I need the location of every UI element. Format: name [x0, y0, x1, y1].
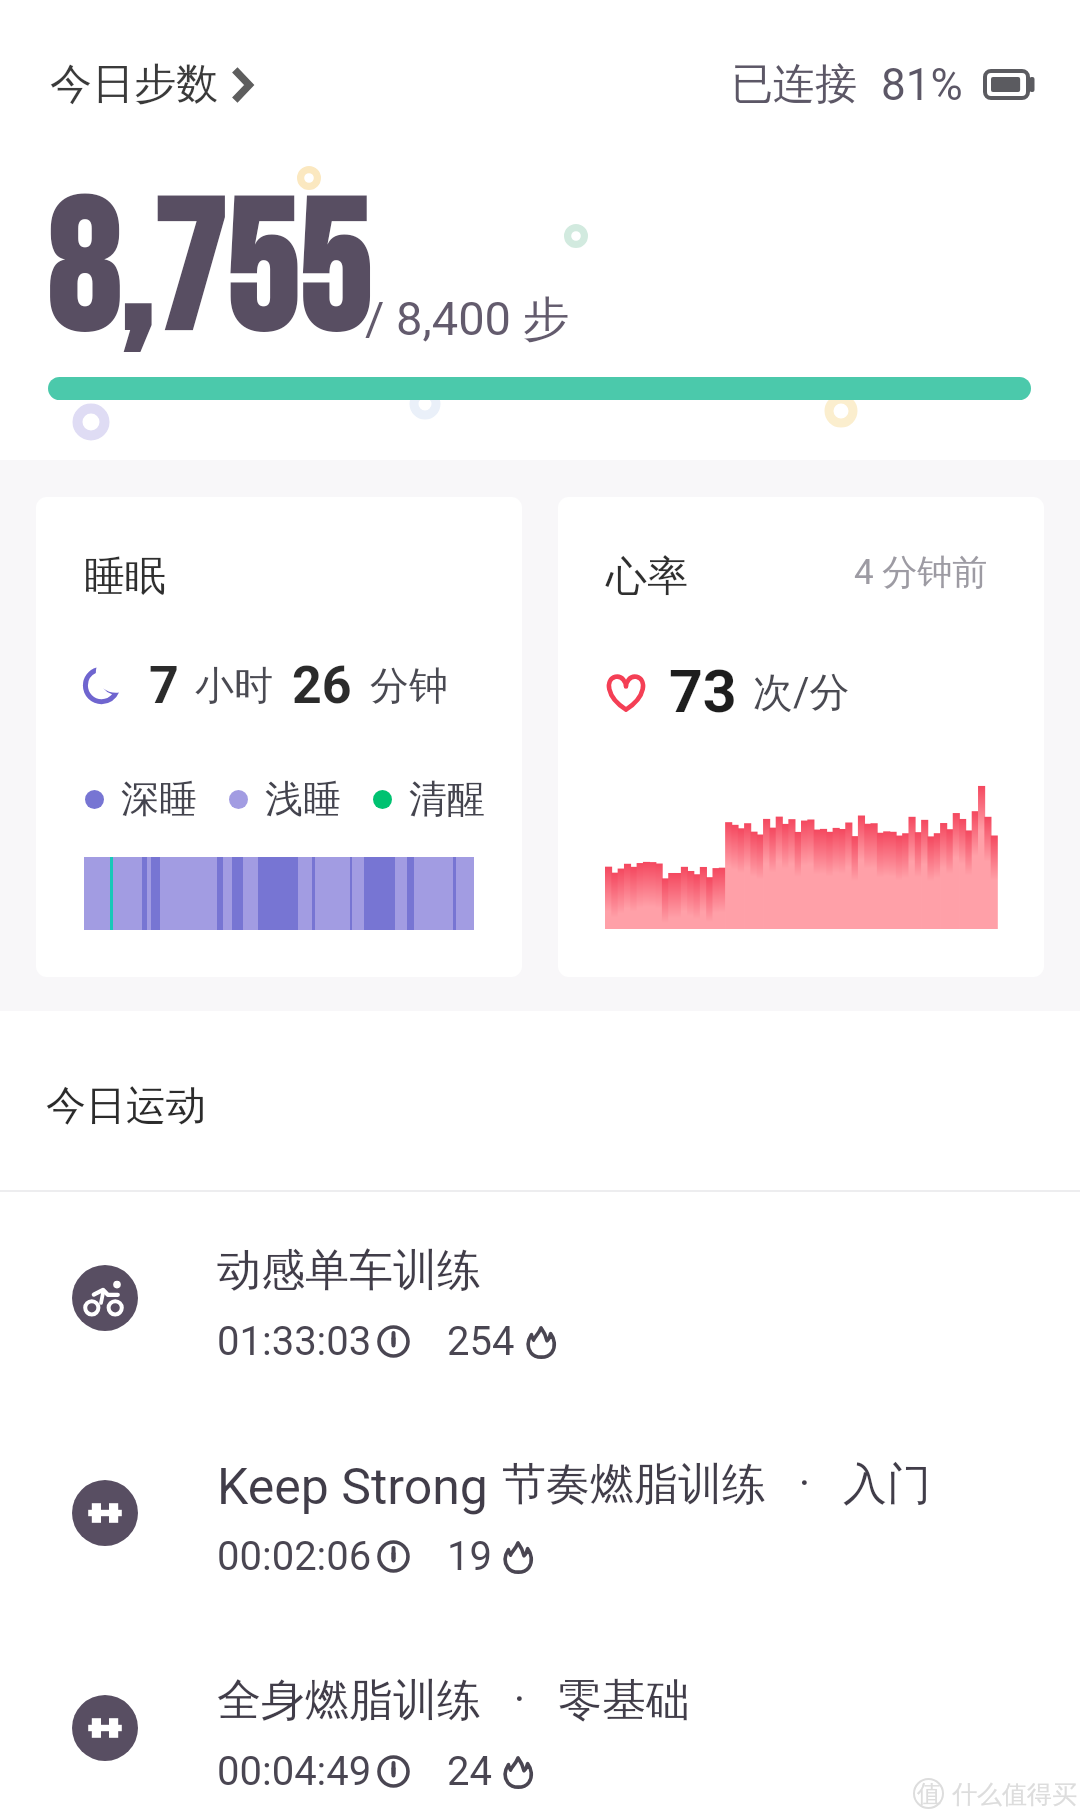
staticText: 26 — [292, 655, 352, 716]
staticText: 睡眠 — [84, 551, 166, 603]
staticText: 心率 — [606, 551, 688, 603]
staticText: 节奏燃脂训练 · 入门 — [502, 1457, 931, 1512]
staticText: 00:02:06 — [217, 1533, 372, 1580]
staticText: 什么值得买 — [952, 1779, 1077, 1810]
button[interactable]: Keep Strong — [0, 1405, 1080, 1624]
staticText: 73 — [669, 657, 737, 726]
staticText: 01:33:03 — [217, 1318, 372, 1365]
button[interactable]: 心率 — [558, 497, 1044, 977]
button[interactable]: 全身燃脂训练 · 零基础 — [0, 1620, 1080, 1819]
staticText: 全身燃脂训练 · 零基础 — [217, 1673, 690, 1728]
button[interactable]: 动感单车训练 — [0, 1190, 1080, 1409]
other: Battery 81 percent — [983, 69, 1035, 100]
staticText: 19 — [447, 1533, 492, 1580]
staticText: 4 分钟前 — [854, 550, 988, 594]
staticText: 分钟 — [370, 661, 448, 710]
staticText: 今日步数 — [50, 58, 218, 111]
staticText: 已连接 — [731, 58, 857, 111]
staticText: 254 — [447, 1318, 515, 1365]
button[interactable]: 睡眠 — [36, 497, 522, 977]
staticText: 次/分 — [753, 667, 850, 717]
button[interactable]: 今日步数 — [34, 42, 270, 127]
staticText: 深睡 — [121, 775, 197, 823]
staticText: 值 — [917, 1779, 941, 1809]
staticText: 24 — [447, 1748, 492, 1795]
staticText: 浅睡 — [265, 775, 341, 823]
staticText: 动感单车训练 — [217, 1243, 481, 1298]
staticText: 今日运动 — [46, 1080, 206, 1130]
staticText: Keep Strong — [217, 1458, 488, 1517]
staticText: 7 — [149, 655, 179, 716]
staticText: 小时 — [195, 661, 273, 710]
staticText: 00:04:49 — [217, 1748, 372, 1795]
staticText: 清醒 — [409, 775, 485, 823]
staticText: 8,755 — [45, 167, 369, 384]
staticText: / 8,400 步 — [365, 290, 570, 349]
staticText: 81% — [881, 59, 963, 111]
